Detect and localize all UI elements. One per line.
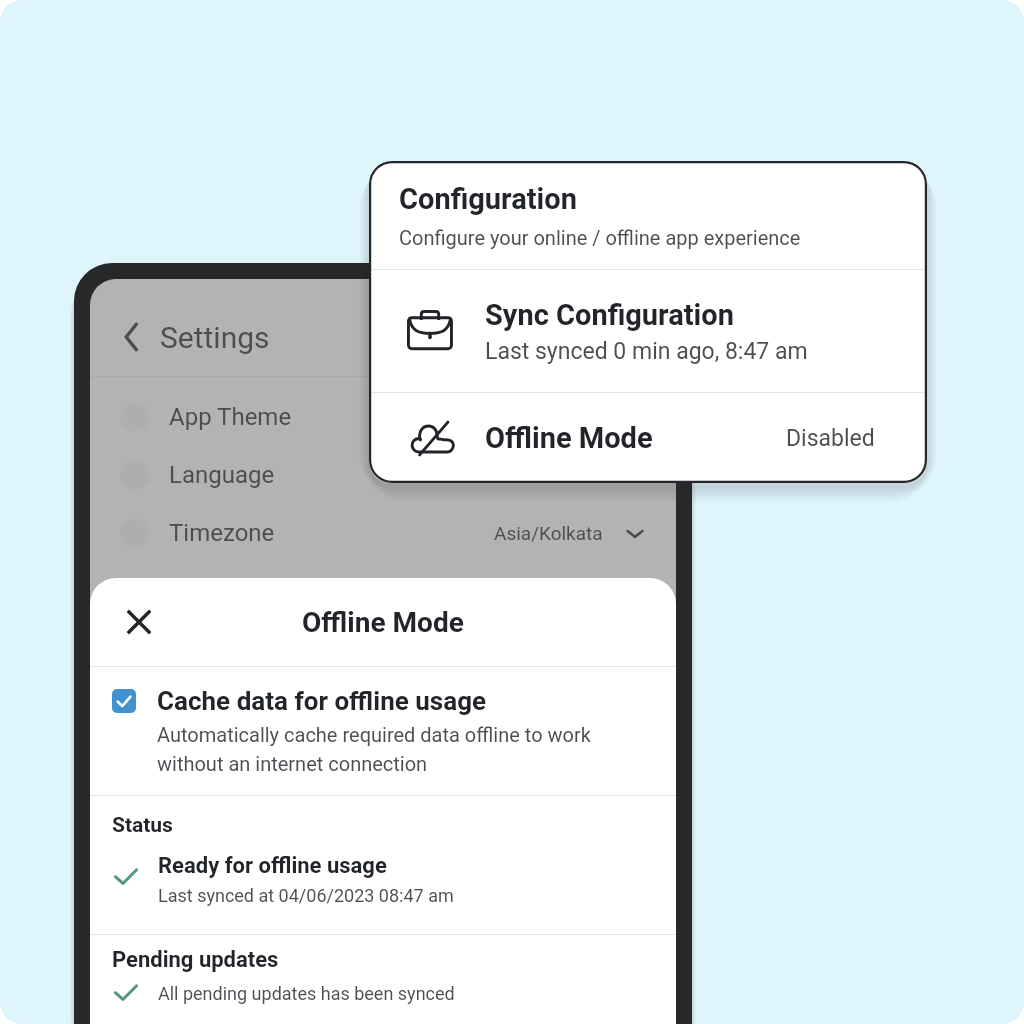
staticText: Offline Mode <box>485 421 653 455</box>
button[interactable]: Close <box>122 605 156 639</box>
staticText: Timezone <box>169 519 275 547</box>
button[interactable]: Language <box>90 446 676 504</box>
staticText: Ready for offline usage <box>158 853 387 879</box>
button[interactable]: Timezone <box>90 504 676 562</box>
staticText: Asia/Kolkata <box>494 522 603 544</box>
staticText: Last synced 0 min ago, 8:47 am <box>485 338 808 365</box>
staticText: Cache data for offline usage <box>157 686 487 716</box>
staticText: Automatically cache required data offlin… <box>157 723 660 776</box>
staticText: Disabled <box>786 425 875 452</box>
staticText: Pending updates <box>112 947 279 973</box>
button[interactable]: Back <box>114 319 150 355</box>
staticText: Configuration <box>399 182 577 216</box>
button[interactable]: App Theme <box>90 388 676 446</box>
button[interactable]: Offline Mode <box>369 393 927 483</box>
button[interactable]: Cache data for offline usage <box>90 667 676 795</box>
staticText: All pending updates has been synced <box>158 983 455 1004</box>
button[interactable]: Sync Configuration <box>369 270 927 392</box>
staticText: Language <box>169 461 275 489</box>
staticText: Configure your online / offline app expe… <box>399 226 801 249</box>
staticText: Last synced at 04/06/2023 08:47 am <box>158 885 454 906</box>
staticText: Offline Mode <box>302 606 464 639</box>
staticText: Status <box>112 813 173 838</box>
staticText: App Theme <box>169 403 292 431</box>
staticText: Sync Configuration <box>485 298 734 332</box>
staticText: Settings <box>160 320 270 355</box>
